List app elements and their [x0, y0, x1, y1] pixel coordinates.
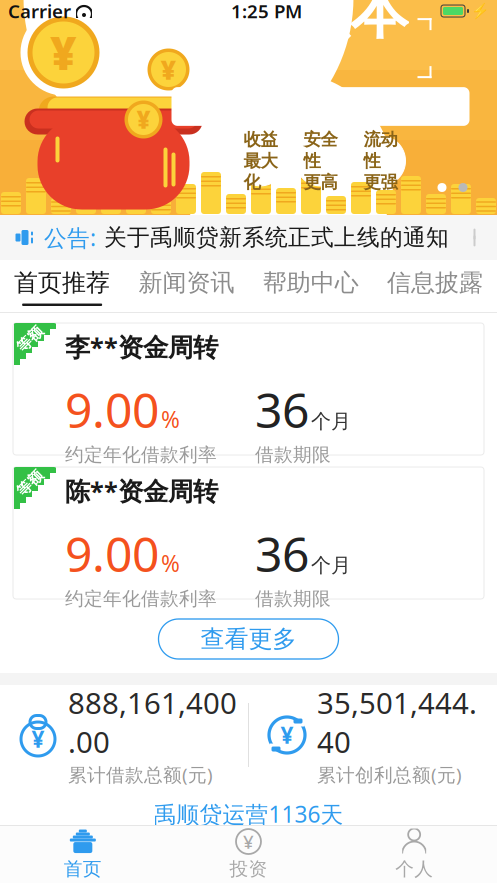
staticText: 借款期限 [255, 587, 331, 610]
staticText: 36 [255, 377, 309, 441]
staticText: 更高 [303, 171, 337, 193]
button[interactable]: 新闻资讯 [124, 260, 248, 312]
staticText: 累计创利总额(元) [317, 762, 462, 787]
staticText: 首页 [64, 857, 102, 880]
staticText: 个月 [311, 409, 351, 434]
staticText: 流动性 [363, 129, 397, 171]
staticText: ¥ [243, 829, 254, 854]
staticText: 个人 [395, 857, 433, 880]
staticText: ¥ [50, 22, 77, 83]
staticText: 首页推荐 [14, 268, 110, 297]
staticText: ¥ [31, 724, 44, 754]
button[interactable]: 公告: [0, 215, 497, 260]
staticText: 陈**资金周转 [65, 474, 218, 507]
staticText: ¥ [136, 104, 150, 135]
staticText: 收益 [243, 129, 277, 150]
staticText: 投资 [229, 857, 267, 880]
button[interactable]: ¥ [0, 685, 248, 785]
button[interactable]: 查看更多 [158, 619, 338, 659]
button[interactable]: 个人 [331, 826, 497, 883]
staticText: 36 [255, 521, 309, 585]
button[interactable]: 李**资金周转 [0, 323, 497, 455]
staticText: 9.00 [65, 377, 159, 441]
staticText: 个月 [311, 553, 351, 578]
staticText: 累计借款总额(元) [68, 762, 213, 787]
staticText: ⚡ [471, 3, 489, 19]
button[interactable]: 首页推荐 [0, 260, 124, 312]
staticText: % [161, 404, 180, 434]
staticText: 约定年化借款利率 [65, 587, 217, 610]
staticText: 帮助中心 [263, 268, 359, 297]
staticText: 约定年化借款利率 [65, 443, 217, 466]
staticText: 信息披露 [387, 268, 483, 297]
button[interactable]: 帮助中心 [248, 260, 373, 312]
button[interactable]: 信息披露 [373, 260, 497, 312]
staticText: 新闻资讯 [138, 268, 234, 297]
staticText: 关于禹顺贷新系统正式上线的通知 [104, 224, 449, 251]
staticText: 李**资金周转 [65, 330, 218, 363]
staticText: ¥ [160, 52, 176, 87]
staticText: Carrier [8, 0, 71, 23]
staticText: % [161, 548, 180, 578]
staticText: 等额 [15, 330, 45, 348]
staticText: 公告: [44, 222, 96, 252]
staticText: 安全性 [303, 129, 337, 171]
staticText: 9.00 [65, 521, 159, 585]
staticText: 更强 [363, 171, 397, 193]
staticText: ¥ [280, 720, 293, 750]
staticText: 查看更多 [200, 624, 296, 654]
button[interactable]: 陈**资金周转 [0, 467, 497, 599]
button[interactable]: 首页 [0, 826, 166, 883]
staticText: 禹顺贷运营1136天 [153, 799, 343, 829]
button[interactable]: ¥ [166, 826, 331, 883]
staticText: 最大化 [243, 150, 277, 193]
staticText: 1:25 PM [231, 0, 302, 23]
staticText: 888,161,400.00 [68, 683, 237, 761]
staticText: 35,501,444.40 [317, 683, 477, 761]
button[interactable]: ¥ [249, 685, 497, 785]
staticText: 等额本息 [232, 0, 409, 120]
staticText: 等额 [15, 474, 45, 492]
staticText: 借款期限 [255, 443, 331, 466]
